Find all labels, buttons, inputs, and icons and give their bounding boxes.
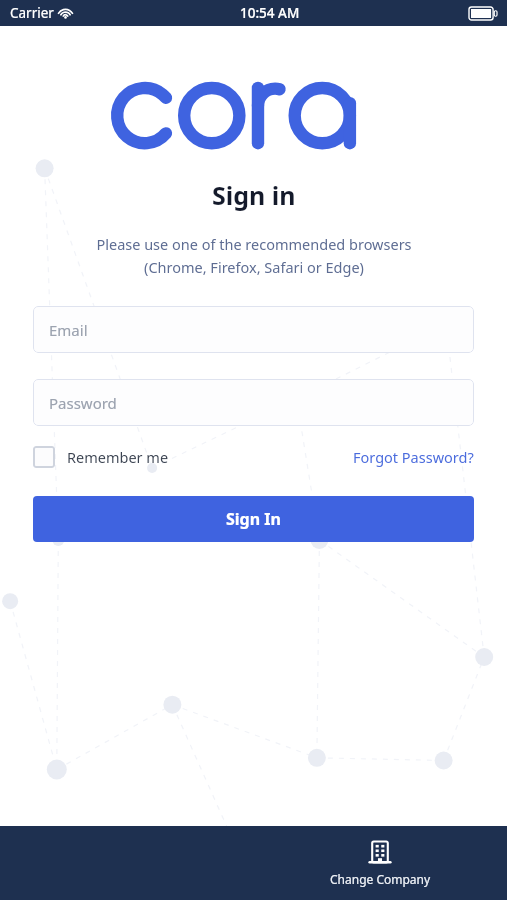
staticText: Change Company (330, 871, 431, 887)
staticText: 10:54 AM (240, 4, 300, 22)
staticText: Sign in (212, 178, 296, 212)
staticText: Carrier (10, 4, 54, 22)
button[interactable]: Email (33, 306, 474, 353)
staticText: Email (49, 320, 88, 340)
button[interactable]: Sign In (33, 496, 474, 542)
staticText: Please use one of the recommended browse… (96, 234, 412, 254)
button[interactable]: Password (33, 379, 474, 426)
staticText: Remember me (67, 447, 169, 467)
staticText: (Chrome, Firefox, Safari or Edge) (144, 257, 364, 277)
button[interactable]: Forgot Password? (353, 447, 474, 467)
staticText: Forgot Password? (353, 447, 474, 467)
staticText: Sign In (226, 508, 281, 530)
staticText: Password (49, 393, 117, 413)
button[interactable]: Remember me (33, 446, 169, 468)
button[interactable]: Change Company (305, 834, 455, 893)
